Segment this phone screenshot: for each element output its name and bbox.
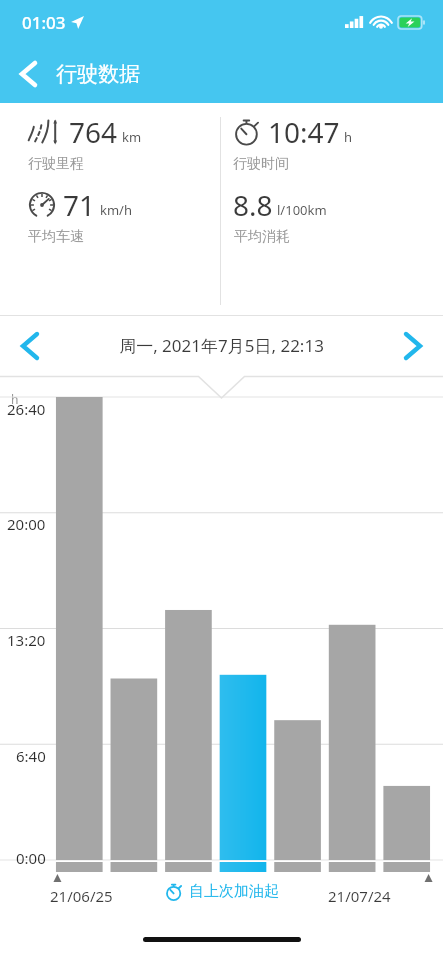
staticText: 行驶数据 — [56, 61, 140, 87]
staticText: 21/06/25 — [50, 886, 113, 906]
staticText: km — [122, 128, 142, 146]
button[interactable]: Next — [383, 315, 443, 376]
staticText: km/h — [100, 201, 132, 219]
staticText: 13:20 — [7, 630, 46, 650]
button[interactable]: Previous — [0, 315, 60, 376]
staticText: 01:03 — [22, 11, 66, 34]
staticText: 行驶里程 — [28, 155, 84, 173]
staticText: 6:40 — [16, 746, 46, 766]
staticText: 平均消耗 — [234, 228, 290, 246]
staticText: 71 — [63, 186, 96, 224]
button[interactable]: 自上次加油起 — [165, 882, 279, 901]
staticText: h — [11, 391, 19, 407]
staticText: 自上次加油起 — [189, 882, 279, 901]
staticText: 21/07/24 — [328, 886, 391, 906]
staticText: 10:47 — [268, 113, 340, 151]
staticText: 周一, 2021年7月5日, 22:13 — [119, 334, 324, 357]
staticText: h — [344, 128, 353, 146]
staticText: 8.8 — [233, 186, 273, 224]
staticText: 平均车速 — [28, 228, 84, 246]
staticText: 20:00 — [7, 514, 46, 534]
staticText: 行驶时间 — [233, 155, 289, 173]
staticText: 0:00 — [16, 848, 46, 868]
button[interactable]: Back — [0, 44, 56, 103]
staticText: 764 — [69, 113, 118, 151]
staticText: l/100km — [277, 201, 327, 219]
staticText: 26:40 — [7, 399, 46, 419]
